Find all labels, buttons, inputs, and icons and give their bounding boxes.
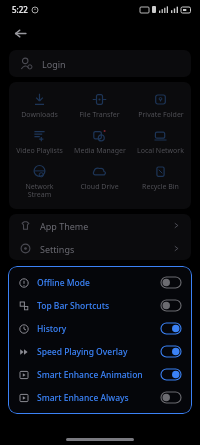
button[interactable]: Media Manager	[69, 124, 130, 160]
button[interactable]: Smart Enhance Animation	[8, 363, 192, 386]
staticText: Settings	[40, 243, 75, 255]
button[interactable]: Recycle Bin	[130, 160, 191, 196]
staticText: Smart Enhance Always	[37, 392, 129, 404]
staticText: Smart Enhance Animation	[37, 369, 143, 381]
button[interactable]: Login	[9, 50, 191, 77]
staticText: Offline Mode	[37, 277, 90, 289]
staticText: Login	[42, 58, 66, 70]
staticText: Cloud Drive	[80, 182, 119, 192]
button[interactable]: Local Network	[130, 124, 191, 160]
staticText: Recycle Bin	[142, 182, 179, 192]
button[interactable]: Video Playlists	[9, 124, 69, 160]
staticText: History	[37, 323, 67, 335]
button[interactable]: History	[8, 317, 192, 340]
button[interactable]: Network Stream	[9, 160, 69, 203]
button[interactable]: Offline Mode	[8, 271, 192, 294]
staticText: Video Playlists	[16, 146, 63, 156]
staticText: Downloads	[21, 110, 58, 120]
staticText: Local Network	[137, 146, 184, 156]
staticText: File Transfer	[79, 110, 120, 120]
button[interactable]: Private Folder	[130, 88, 191, 124]
button[interactable]: Settings	[9, 237, 191, 260]
staticText: Media Manager	[74, 146, 126, 156]
staticText: 5:22	[12, 4, 28, 15]
staticText: Network Stream	[25, 182, 54, 199]
button[interactable]: Smart Enhance Always	[8, 386, 192, 409]
button[interactable]: Top Bar Shortcuts	[8, 294, 192, 317]
button[interactable]: Speed Playing Overlay	[8, 340, 192, 363]
staticText: Private Folder	[138, 110, 184, 120]
button[interactable]: Back	[6, 19, 34, 47]
button[interactable]: App Theme	[9, 214, 191, 237]
staticText: App Theme	[40, 220, 89, 232]
staticText: Top Bar Shortcuts	[37, 300, 110, 312]
button[interactable]: Cloud Drive	[69, 160, 130, 196]
button[interactable]: File Transfer	[69, 88, 130, 124]
button[interactable]: Downloads	[9, 88, 69, 124]
staticText: Speed Playing Overlay	[37, 346, 128, 358]
